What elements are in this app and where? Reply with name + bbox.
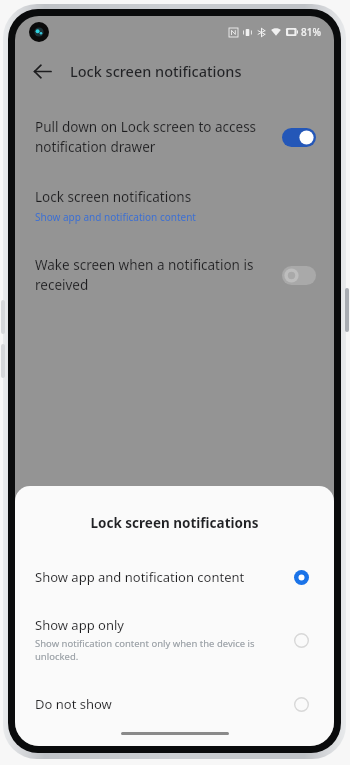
- button[interactable]: Do not show: [15, 683, 334, 725]
- button[interactable]: Toggle on: [282, 128, 316, 147]
- button[interactable]: Wake screen when a notification is recei…: [15, 250, 334, 300]
- staticText: Do not show: [35, 695, 112, 713]
- button[interactable]: Show app only: [15, 612, 334, 667]
- button[interactable]: Back: [23, 52, 61, 90]
- staticText: Show app and notification content: [35, 210, 196, 224]
- staticText: Pull down on Lock screen to access notif…: [35, 118, 257, 156]
- button[interactable]: Lock screen notifications: [15, 184, 334, 228]
- staticText: 81%: [301, 25, 321, 39]
- button[interactable]: Selected: [288, 564, 314, 590]
- button[interactable]: Toggle off: [282, 266, 316, 285]
- staticText: Lock screen notifications: [35, 188, 192, 206]
- staticText: Show app and notification content: [35, 568, 245, 586]
- button[interactable]: Not selected: [288, 691, 314, 717]
- button[interactable]: Pull down on Lock screen to access notif…: [15, 112, 334, 162]
- button[interactable]: Not selected: [288, 627, 314, 653]
- staticText: Lock screen notifications: [90, 514, 259, 532]
- button[interactable]: Show app and notification content: [15, 556, 334, 598]
- staticText: Show notification content only when the …: [35, 637, 255, 663]
- staticText: Lock screen notifications: [70, 61, 242, 81]
- staticText: Wake screen when a notification is recei…: [35, 256, 254, 294]
- staticText: Show app only: [35, 616, 124, 634]
